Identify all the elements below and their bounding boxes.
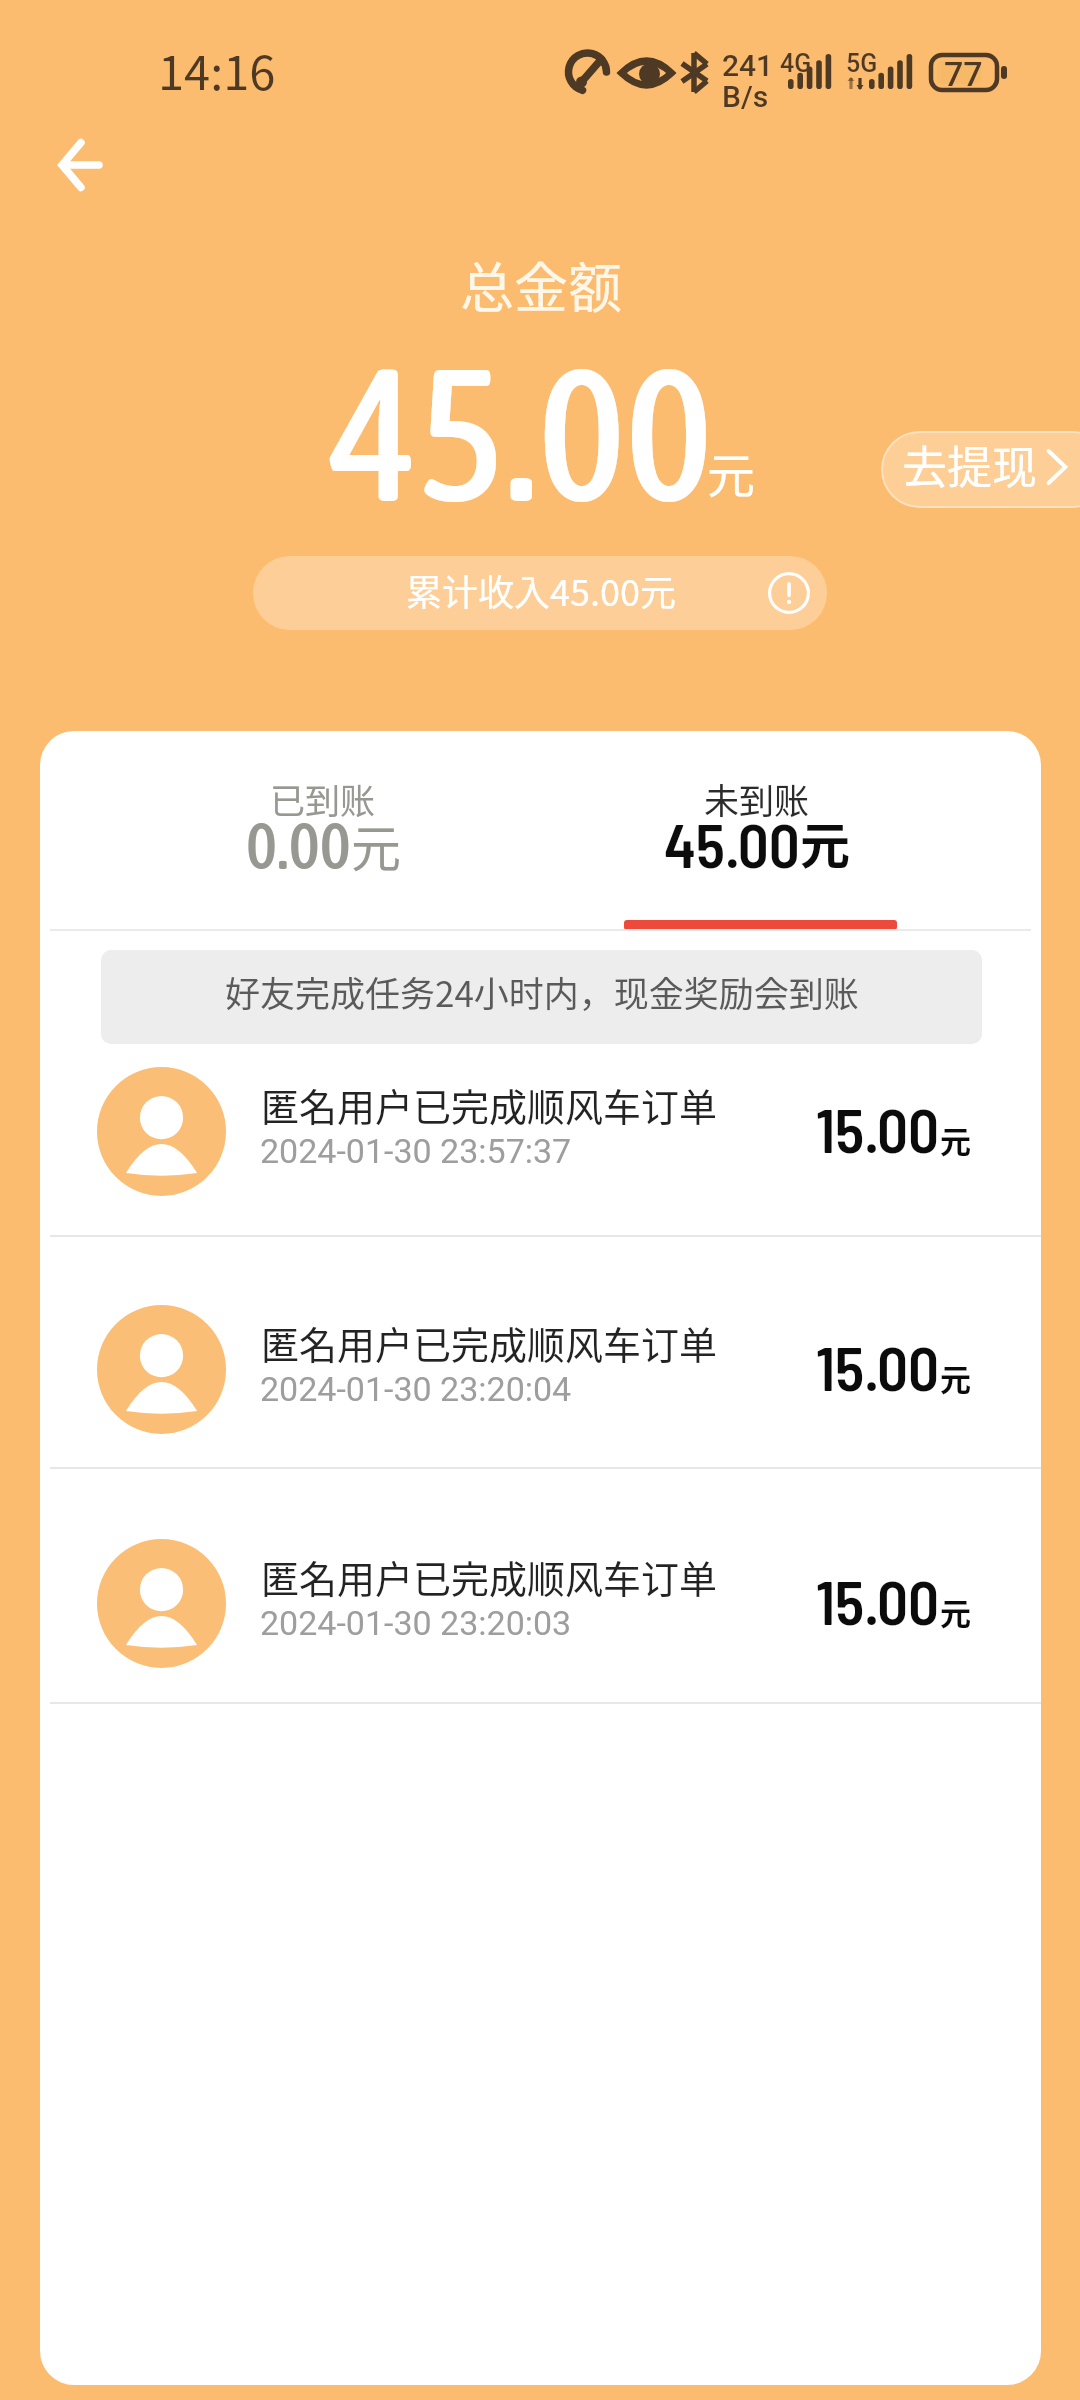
staticText: 匿名用户已完成顺风车订单 (261, 1549, 718, 1604)
staticText: 匿名用户已完成顺风车订单 (261, 1077, 718, 1132)
staticText: 未到账 (704, 773, 810, 824)
button[interactable]: 未到账 (587, 731, 927, 930)
button[interactable]: 匿名用户已完成顺风车订单 (40, 1254, 1041, 1486)
staticText: 2024-01-30 23:20:04 (260, 1369, 572, 1409)
staticText: 已到账 (270, 773, 376, 824)
staticText: 4G (780, 49, 812, 78)
button[interactable]: 已到账 (153, 731, 493, 930)
button[interactable]: 累计收入45.00元 (253, 556, 827, 630)
staticText: 元 (940, 1355, 971, 1400)
staticText: 2024-01-30 23:20:03 (260, 1603, 572, 1643)
staticText: 元 (351, 809, 401, 881)
button[interactable]: 去提现 (881, 431, 1080, 508)
staticText: 元 (940, 1117, 971, 1162)
staticText: 好友完成任务24小时内，现金奖励会到账 (225, 966, 859, 1017)
staticText: 45.00 (330, 327, 713, 540)
staticText: 14:16 (158, 35, 276, 103)
staticText: 15.00 (816, 1092, 940, 1165)
staticText: 元 (707, 437, 756, 507)
button[interactable]: 匿名用户已完成顺风车订单 (40, 1488, 1041, 1720)
staticText: 45.00 (664, 807, 800, 880)
staticText: 去提现 (902, 432, 1038, 497)
button[interactable]: 匿名用户已完成顺风车订单 (40, 1016, 1041, 1248)
staticText: 元 (800, 806, 850, 878)
staticText: 5G (846, 49, 878, 78)
staticText: 总金额 (460, 245, 622, 323)
staticText: 77 (944, 54, 983, 94)
staticText: 15.00 (816, 1330, 940, 1403)
staticText: 元 (940, 1589, 971, 1634)
staticText: 2024-01-30 23:57:37 (260, 1131, 572, 1171)
staticText: 累计收入45.00元 (406, 564, 676, 616)
button[interactable]: Income details (768, 572, 810, 614)
staticText: 匿名用户已完成顺风车订单 (261, 1315, 718, 1370)
staticText: 241 B/s (722, 48, 774, 115)
staticText: 0.00 (246, 807, 351, 883)
button[interactable]: Back (38, 123, 122, 207)
staticText: 15.00 (816, 1564, 940, 1637)
